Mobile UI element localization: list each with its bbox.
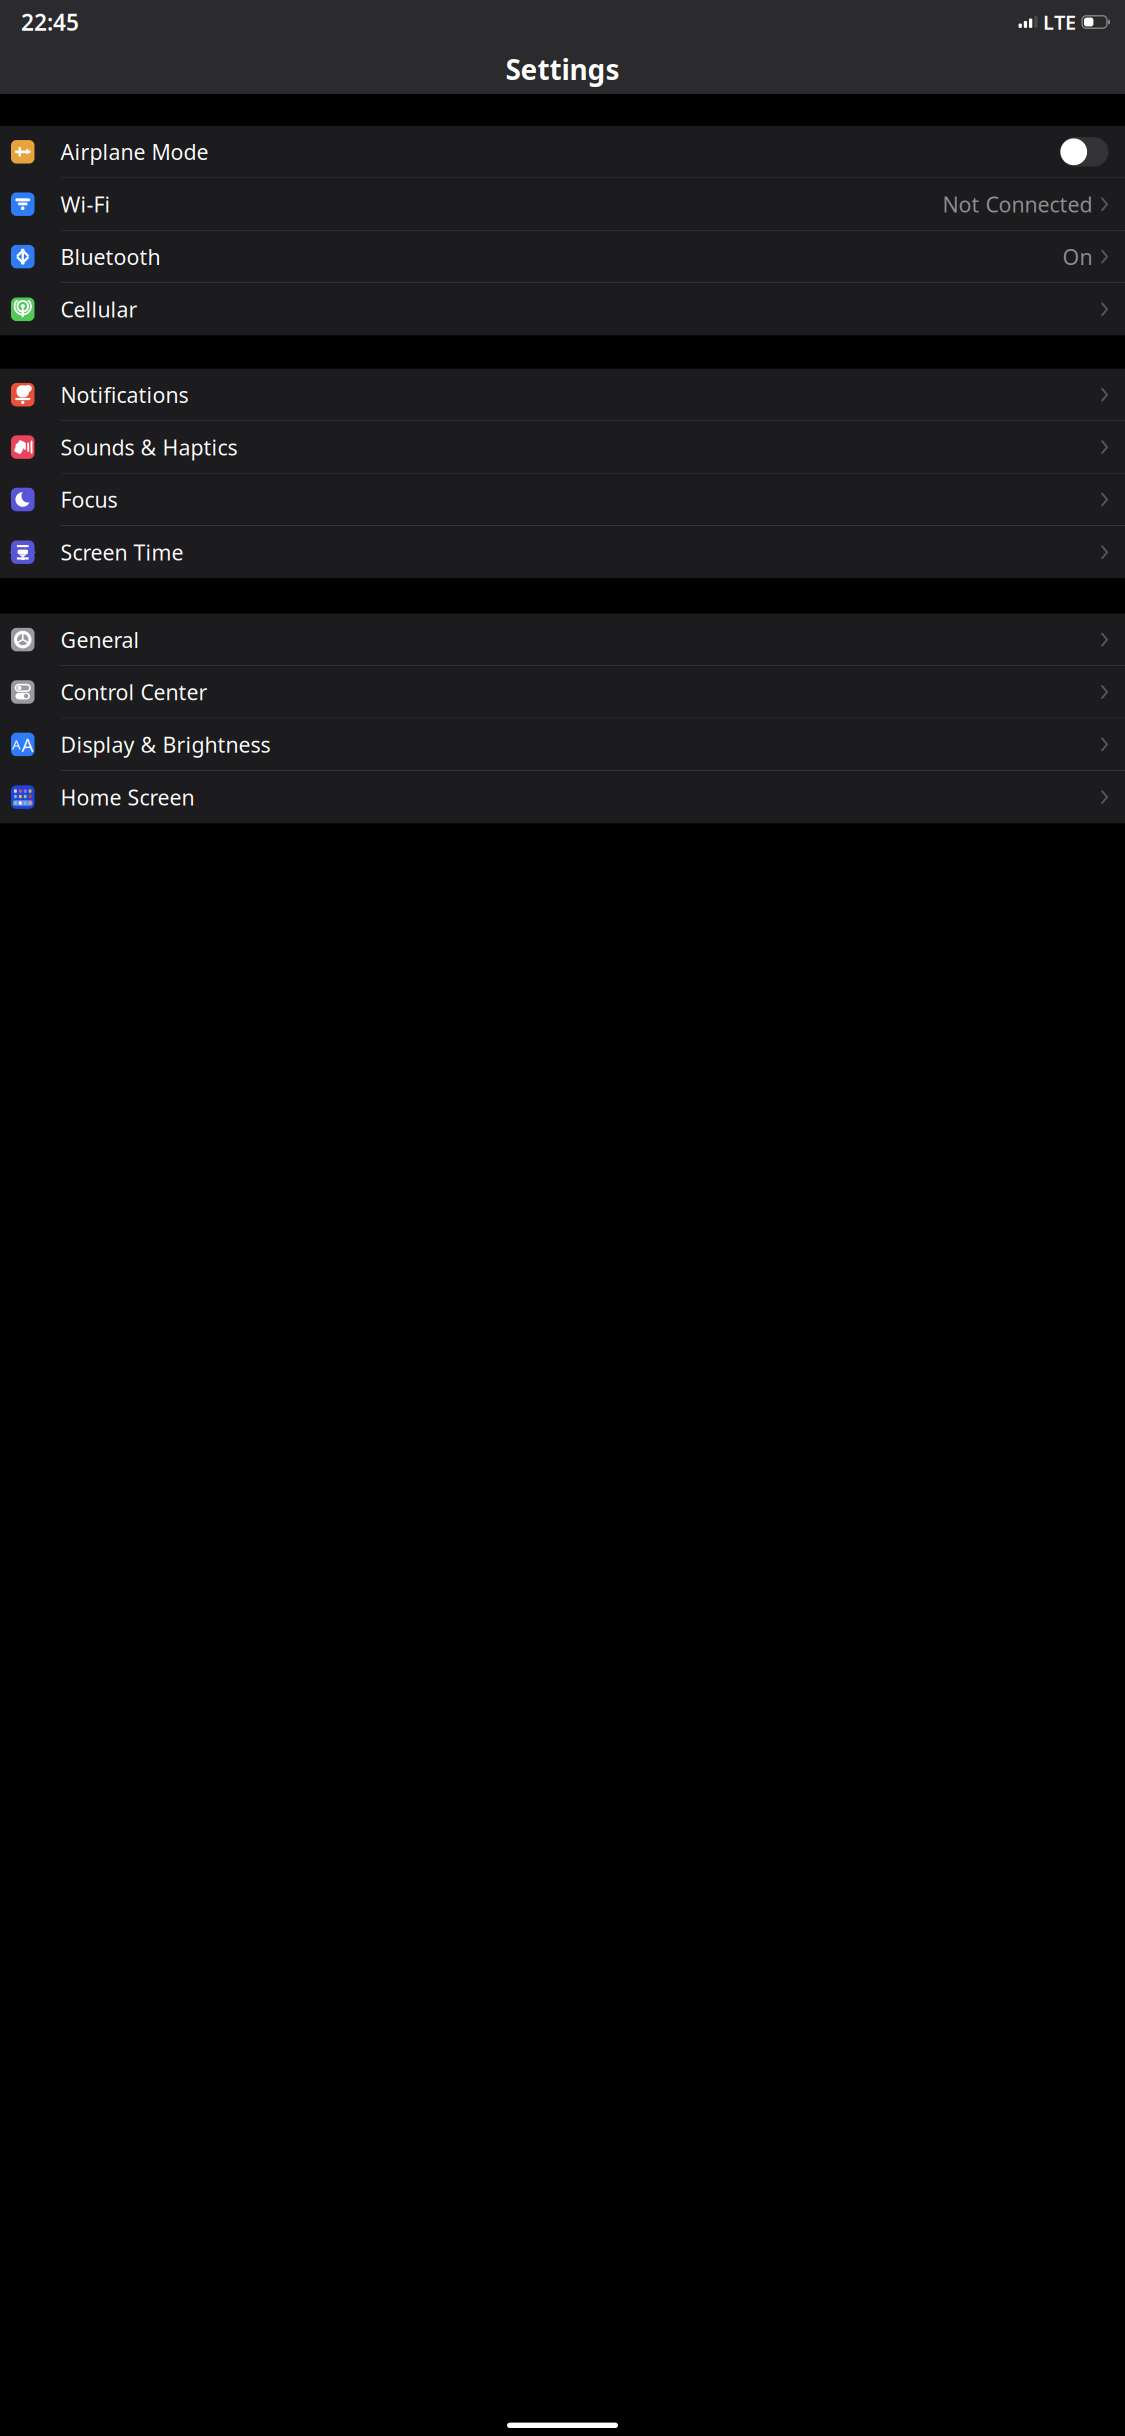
staticText: On — [1062, 242, 1092, 271]
button[interactable]: Wi-Fi — [0, 178, 1125, 231]
staticText: Display & Brightness — [60, 730, 270, 758]
staticText: Notifications — [60, 380, 188, 409]
staticText: Sounds & Haptics — [60, 433, 237, 461]
staticText: Focus — [60, 485, 117, 514]
staticText: LTE — [1043, 9, 1076, 35]
staticText: General — [60, 625, 139, 654]
button[interactable]: Control Center — [0, 666, 1125, 718]
button[interactable]: A — [0, 718, 1125, 771]
staticText: Not Connected — [942, 190, 1092, 218]
staticText: Screen Time — [60, 538, 183, 566]
button[interactable]: Bluetooth — [0, 231, 1125, 283]
button[interactable]: Notifications — [0, 369, 1125, 421]
button[interactable]: Focus — [0, 474, 1125, 526]
staticText: Control Center — [60, 678, 207, 706]
staticText: Wi-Fi — [60, 190, 110, 218]
button[interactable]: Home Screen — [0, 771, 1125, 823]
staticText: Bluetooth — [60, 242, 160, 271]
staticText: A — [21, 732, 33, 757]
button[interactable]: Screen Time — [0, 526, 1125, 578]
staticText: 22:45 — [21, 7, 79, 37]
staticText: A — [12, 735, 21, 753]
button[interactable]: Sounds & Haptics — [0, 421, 1125, 474]
staticText: Airplane Mode — [60, 138, 208, 166]
staticText: Home Screen — [60, 783, 194, 811]
button[interactable]: General — [0, 614, 1125, 666]
staticText: Cellular — [60, 295, 137, 323]
button[interactable]: Cellular — [0, 283, 1125, 335]
staticText: Settings — [505, 51, 619, 88]
button[interactable]: Airplane Mode — [0, 126, 1125, 178]
